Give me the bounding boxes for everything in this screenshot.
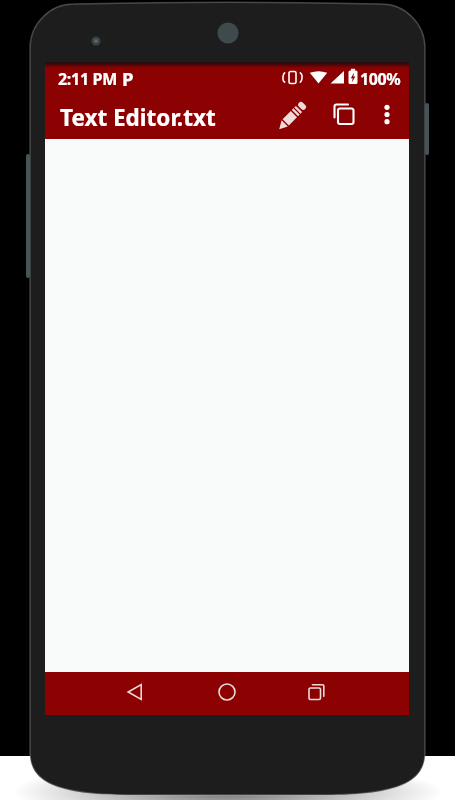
button[interactable]: [292, 672, 340, 715]
staticText: Text Editor.txt: [60, 102, 216, 133]
button[interactable]: [323, 95, 363, 139]
button[interactable]: [271, 95, 311, 139]
button[interactable]: [203, 672, 251, 715]
staticText: P: [122, 66, 134, 91]
button[interactable]: [111, 672, 159, 715]
staticText: 2:11 PM: [58, 68, 118, 90]
staticText: 100%: [360, 68, 401, 90]
button[interactable]: [367, 95, 407, 139]
